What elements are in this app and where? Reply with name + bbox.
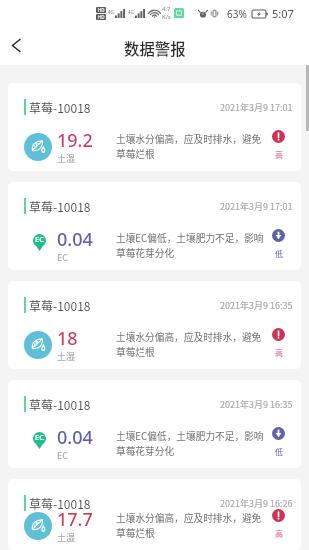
- staticText: 低: [275, 248, 283, 260]
- staticText: EC: [57, 251, 69, 264]
- staticText: 土湿: [57, 350, 76, 363]
- staticText: 2021年3月9 16:35: [220, 299, 293, 312]
- staticText: 63%: [227, 7, 247, 21]
- staticText: EC: [57, 449, 69, 462]
- staticText: 高: [275, 347, 283, 359]
- staticText: 5:07: [272, 6, 294, 21]
- staticText: 土壤EC偏低，土壤肥力不足，影响草莓花芽分化: [116, 429, 264, 458]
- staticText: 土壤水分偏高，应及时排水，避免草莓烂根: [116, 511, 264, 540]
- staticText: 2021年3月9 16:35: [220, 398, 293, 411]
- staticText: 土壤水分偏高，应及时排水，避免草莓烂根: [116, 132, 264, 161]
- staticText: 2021年3月9 17:01: [220, 200, 293, 213]
- staticText: 草莓-10018: [29, 99, 91, 116]
- staticText: 土湿: [57, 531, 76, 544]
- other: 高警报: [272, 328, 285, 341]
- button[interactable]: 草莓-10018: [8, 479, 301, 550]
- staticText: 高: [275, 149, 283, 161]
- button[interactable]: 草莓-10018: [8, 281, 301, 369]
- staticText: 草莓-10018: [29, 198, 91, 215]
- other: 高警报: [272, 130, 285, 143]
- staticText: 4.7: [162, 5, 171, 13]
- staticText: HD: [98, 14, 105, 20]
- staticText: 0.04: [57, 227, 93, 252]
- staticText: 18: [57, 326, 78, 351]
- button[interactable]: 草莓-10018: [8, 380, 301, 468]
- staticText: 4G: [128, 9, 134, 15]
- button[interactable]: 草莓-10018: [8, 83, 301, 171]
- staticText: HD: [98, 7, 105, 13]
- staticText: 2021年3月9 16:26: [220, 497, 293, 510]
- staticText: 草莓-10018: [29, 495, 91, 512]
- staticText: 19.2: [57, 128, 93, 153]
- staticText: 土湿: [57, 152, 76, 165]
- button[interactable]: 草莓-10018: [8, 182, 301, 270]
- staticText: 低: [275, 446, 283, 458]
- staticText: 17.7: [57, 507, 93, 532]
- staticText: 草莓-10018: [29, 396, 91, 413]
- button[interactable]: 返回: [0, 26, 32, 65]
- staticText: 高: [275, 528, 283, 540]
- staticText: 2021年3月9 17:01: [220, 101, 293, 114]
- staticText: 草莓-10018: [29, 297, 91, 314]
- staticText: 4G: [108, 9, 114, 15]
- other: 低警报: [272, 229, 285, 242]
- staticText: EC: [35, 432, 44, 442]
- staticText: 土壤EC偏低，土壤肥力不足，影响草莓花芽分化: [116, 231, 264, 260]
- other: 高警报: [272, 509, 285, 522]
- staticText: 0.04: [57, 425, 93, 450]
- staticText: 土壤水分偏高，应及时排水，避免草莓烂根: [116, 330, 264, 359]
- staticText: EC: [35, 234, 44, 244]
- staticText: 数据警报: [124, 37, 186, 59]
- other: 低警报: [272, 427, 285, 440]
- staticText: K/s: [162, 13, 171, 21]
